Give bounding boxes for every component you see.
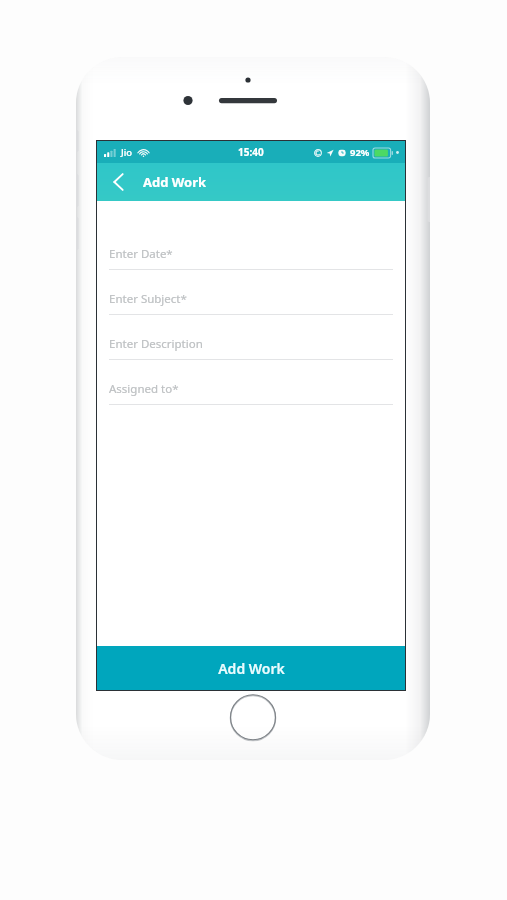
staticText: 92% xyxy=(350,146,370,159)
button[interactable]: Home xyxy=(229,694,277,742)
button[interactable]: Enter Subject* xyxy=(109,284,393,329)
button[interactable]: Enter Date* xyxy=(109,239,393,284)
staticText: 15:40 xyxy=(238,145,264,159)
staticText: Jio xyxy=(121,146,133,159)
staticText: Enter Subject* xyxy=(109,291,187,307)
button[interactable]: Enter Description xyxy=(109,329,393,374)
staticText: Enter Description xyxy=(109,336,203,352)
button[interactable]: Add Work xyxy=(97,646,405,690)
staticText: Add Work xyxy=(218,659,285,678)
button[interactable]: Back xyxy=(103,167,133,197)
staticText: Add Work xyxy=(143,173,207,191)
button[interactable]: Assigned to* xyxy=(109,374,393,419)
staticText: Assigned to* xyxy=(109,381,179,397)
staticText: Enter Date* xyxy=(109,246,173,262)
